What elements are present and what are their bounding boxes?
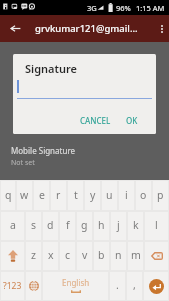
button[interactable]: a — [1, 212, 24, 240]
button[interactable]: English — [43, 272, 108, 300]
staticText: v — [82, 248, 88, 262]
button[interactable]: r — [51, 181, 66, 210]
button[interactable]: . — [110, 272, 125, 300]
button[interactable]: i — [119, 181, 134, 210]
button[interactable]: b — [94, 242, 109, 270]
staticText: o — [140, 188, 147, 202]
button[interactable]: OK — [121, 111, 143, 130]
button[interactable]: s — [26, 212, 41, 240]
staticText: 96% — [116, 3, 131, 13]
button[interactable]: j — [111, 212, 126, 240]
button[interactable]: h — [94, 212, 109, 240]
button[interactable]: x — [43, 242, 58, 270]
staticText: s — [31, 218, 37, 232]
staticText: x — [48, 248, 54, 262]
button[interactable]: t — [68, 181, 83, 210]
staticText: l — [155, 218, 158, 232]
button[interactable]: o — [136, 181, 151, 210]
staticText: z — [31, 248, 36, 262]
staticText: h — [98, 218, 105, 232]
staticText: ?123 — [3, 280, 22, 292]
button[interactable]: k — [128, 212, 143, 240]
staticText: 3G — [87, 3, 97, 13]
staticText: Signature — [25, 61, 77, 76]
button[interactable]: z — [26, 242, 41, 270]
button[interactable]: ?123 — [1, 272, 24, 300]
staticText: r — [56, 188, 61, 202]
staticText: e — [39, 188, 45, 202]
button[interactable]: Backspace — [145, 242, 168, 270]
staticText: Not set — [11, 158, 35, 168]
button[interactable]: p — [153, 181, 168, 210]
staticText: a — [10, 218, 16, 232]
staticText: , — [133, 278, 136, 292]
staticText: Mobile Signature — [11, 145, 76, 156]
staticText: j — [117, 218, 120, 232]
staticText: CANCEL — [80, 115, 111, 126]
staticText: . — [116, 278, 119, 292]
staticText: f — [66, 218, 70, 232]
staticText: m — [131, 248, 141, 262]
staticText: w — [20, 188, 29, 202]
staticText: p — [157, 188, 164, 202]
staticText: 1:15 AM — [136, 3, 165, 13]
button[interactable]: l — [145, 212, 168, 240]
staticText: q — [5, 188, 12, 202]
button[interactable]: m — [128, 242, 143, 270]
staticText: g — [81, 218, 88, 232]
button[interactable]: Change language — [26, 272, 41, 300]
button[interactable]: c — [60, 242, 75, 270]
button[interactable]: q — [1, 181, 15, 210]
button[interactable]: f — [60, 212, 75, 240]
staticText: grvkumar121@gmail... — [35, 22, 138, 35]
button[interactable]: g — [77, 212, 92, 240]
staticText: n — [115, 248, 122, 262]
staticText: c — [65, 248, 71, 262]
staticText: b — [98, 248, 105, 262]
button[interactable]: Navigate up — [0, 15, 30, 42]
staticText: t — [74, 188, 78, 202]
button[interactable]: , — [127, 272, 142, 300]
staticText: English — [62, 277, 90, 288]
staticText: d — [47, 218, 54, 232]
button[interactable]: v — [77, 242, 92, 270]
button[interactable]: u — [102, 181, 117, 210]
button[interactable]: CANCEL — [75, 111, 116, 130]
staticText: k — [133, 218, 139, 232]
button[interactable]: d — [43, 212, 58, 240]
button[interactable]: y — [85, 181, 100, 210]
button[interactable]: Enter — [144, 272, 168, 300]
staticText: i — [125, 188, 128, 202]
staticText: y — [90, 188, 96, 202]
staticText: u — [106, 188, 113, 202]
button[interactable]: Shift — [1, 242, 24, 270]
button[interactable]: n — [111, 242, 126, 270]
button[interactable]: More options — [154, 15, 169, 42]
staticText: OK — [126, 115, 138, 126]
button[interactable]: w — [17, 181, 32, 210]
button[interactable]: e — [34, 181, 49, 210]
